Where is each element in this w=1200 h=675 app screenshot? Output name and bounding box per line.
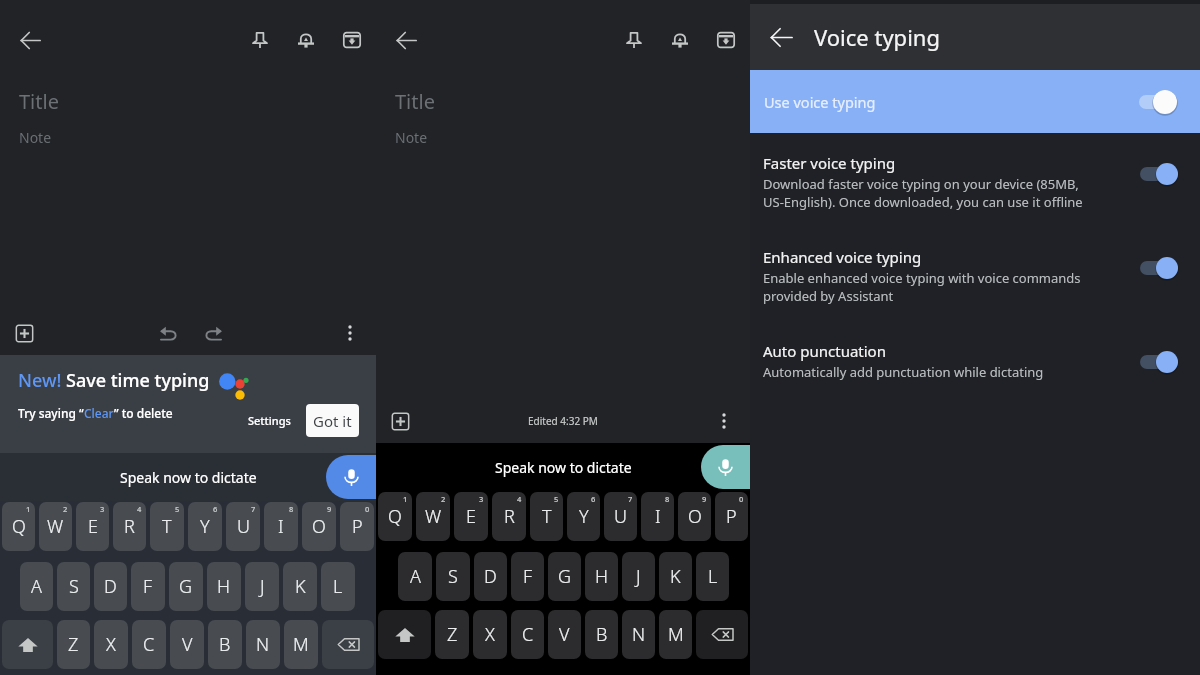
button[interactable]: I [264, 502, 298, 551]
staticText: 8 [289, 504, 294, 514]
button[interactable]: M [659, 610, 692, 659]
button[interactable]: F [131, 562, 165, 611]
button[interactable]: G [169, 562, 203, 611]
button[interactable]: N [622, 610, 655, 659]
button[interactable]: C [132, 620, 166, 669]
button[interactable]: X [94, 620, 128, 669]
button[interactable]: Auto punctuation [750, 341, 1200, 399]
button[interactable]: W [39, 502, 72, 551]
button[interactable]: S [436, 552, 470, 601]
button[interactable]: B [585, 610, 618, 659]
button[interactable]: T [530, 492, 563, 541]
staticText: Y [579, 504, 589, 529]
button[interactable]: L [321, 562, 355, 611]
button[interactable]: O [678, 492, 711, 541]
button[interactable]: Archive [704, 18, 748, 62]
button[interactable]: Add [382, 403, 418, 439]
button[interactable]: Backspace [696, 610, 748, 659]
button[interactable]: J [245, 562, 279, 611]
staticText: Download faster voice typing on your dev… [763, 175, 1079, 193]
button[interactable]: Got it [306, 404, 359, 437]
button[interactable]: O [302, 502, 336, 551]
staticText: 6 [213, 504, 218, 514]
button[interactable]: Pin [612, 18, 656, 62]
button[interactable]: C [511, 610, 544, 659]
button[interactable]: D [94, 562, 127, 611]
button[interactable]: V [170, 620, 204, 669]
button[interactable]: H [207, 562, 241, 611]
button[interactable]: Add [6, 315, 42, 351]
staticText: O [312, 514, 326, 539]
button[interactable]: M [284, 620, 318, 669]
button[interactable]: E [454, 492, 488, 541]
button[interactable]: Microphone [701, 445, 750, 489]
staticText: U [614, 504, 627, 529]
staticText: L [333, 574, 343, 599]
button[interactable]: Redo [195, 314, 233, 352]
button[interactable]: R [113, 502, 146, 551]
staticText: Z [447, 622, 458, 647]
button[interactable]: A [20, 562, 53, 611]
button[interactable]: Reminder [658, 18, 702, 62]
button[interactable]: Z [435, 610, 469, 659]
staticText: A [410, 564, 421, 589]
button[interactable]: Faster voice typing [750, 153, 1200, 225]
button[interactable]: U [226, 502, 260, 551]
button[interactable]: H [585, 552, 618, 601]
button[interactable]: P [340, 502, 374, 551]
button[interactable]: Y [567, 492, 600, 541]
button[interactable]: F [511, 552, 544, 601]
button[interactable]: Y [188, 502, 222, 551]
staticText: F [143, 574, 153, 599]
button[interactable]: I [641, 492, 674, 541]
button[interactable]: Q [378, 492, 412, 541]
button[interactable]: Reminder [284, 18, 328, 62]
button[interactable]: Back [384, 18, 428, 62]
button[interactable]: D [474, 552, 507, 601]
button[interactable]: W [416, 492, 450, 541]
button[interactable]: S [57, 562, 90, 611]
button[interactable]: Enhanced voice typing [750, 247, 1200, 319]
button[interactable]: More options [706, 403, 742, 439]
staticText: Speak now to dictate [120, 468, 257, 487]
button[interactable]: A [398, 552, 432, 601]
button[interactable]: X [473, 610, 507, 659]
button[interactable]: K [659, 552, 692, 601]
button[interactable]: Undo [149, 314, 187, 352]
button[interactable]: R [492, 492, 526, 541]
button[interactable]: Settings [241, 406, 297, 434]
button[interactable]: T [150, 502, 184, 551]
button[interactable]: More options [332, 315, 368, 351]
button[interactable]: B [208, 620, 242, 669]
button[interactable]: Pin [238, 18, 282, 62]
button[interactable]: Microphone [326, 455, 376, 499]
button[interactable]: U [604, 492, 637, 541]
staticText: E [466, 504, 476, 529]
staticText: S [448, 564, 458, 589]
button[interactable]: Back [760, 16, 802, 58]
button[interactable]: Back [8, 18, 52, 62]
button[interactable]: J [622, 552, 655, 601]
staticText: Q [388, 504, 402, 529]
staticText: P [352, 514, 363, 539]
button[interactable]: G [548, 552, 581, 601]
button[interactable]: Archive [330, 18, 374, 62]
button[interactable]: P [715, 492, 748, 541]
button[interactable]: N [246, 620, 280, 669]
button[interactable]: Use voice typing [750, 70, 1200, 133]
button[interactable]: Backspace [322, 620, 374, 669]
button[interactable]: V [548, 610, 581, 659]
staticText: 1 [403, 494, 408, 504]
button[interactable]: Shift [2, 620, 53, 669]
button[interactable]: L [696, 552, 729, 601]
button[interactable]: Shift [378, 610, 431, 659]
staticText: K [295, 574, 306, 599]
button[interactable]: Q [2, 502, 35, 551]
button[interactable]: K [283, 562, 317, 611]
button[interactable]: Z [57, 620, 90, 669]
staticText: Got it [313, 411, 352, 431]
staticText: I [655, 504, 661, 529]
button[interactable]: E [76, 502, 109, 551]
staticText: J [260, 574, 265, 599]
staticText: Title [19, 88, 59, 115]
